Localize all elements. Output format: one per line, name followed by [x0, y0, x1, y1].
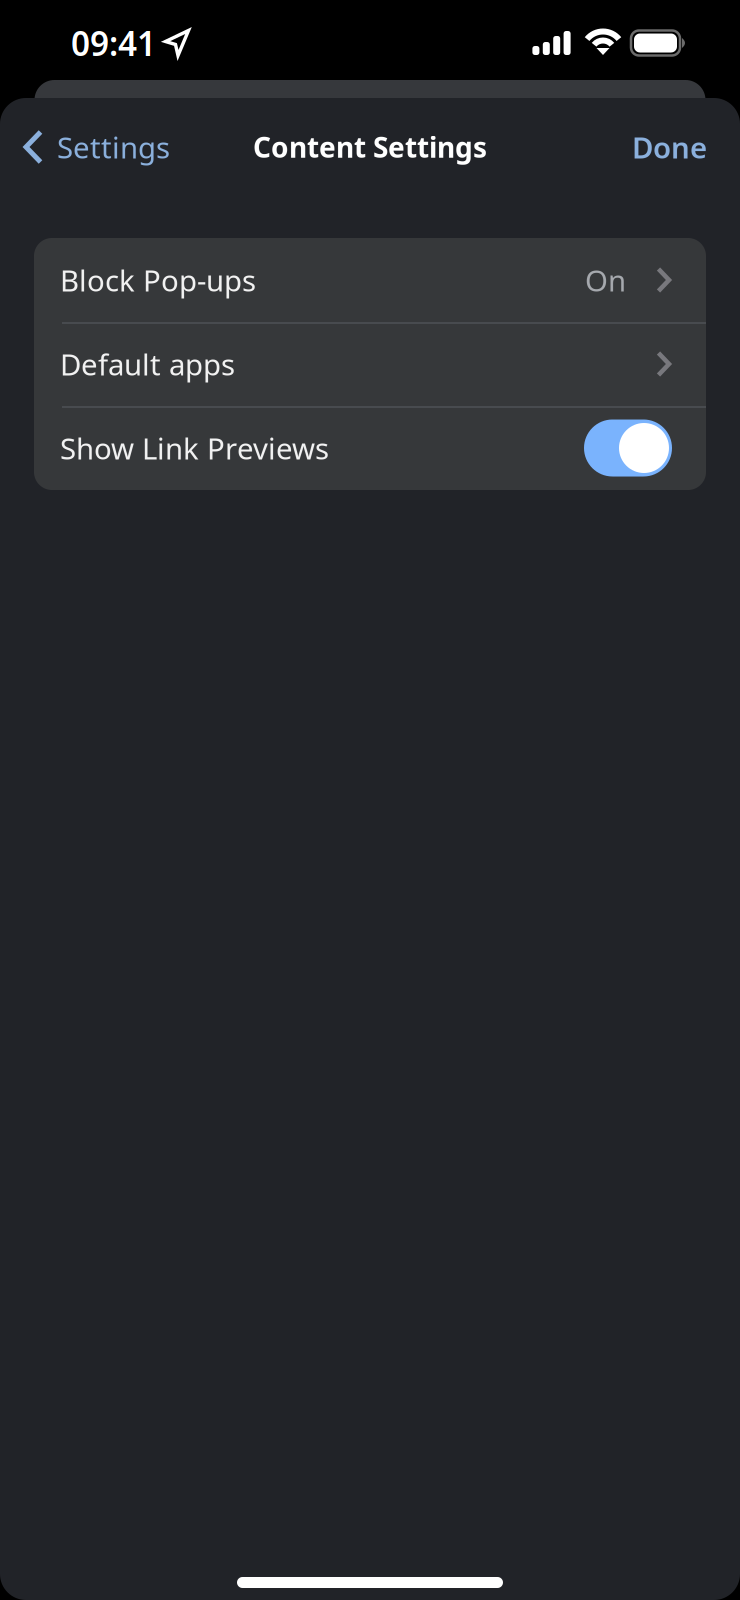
staticText: On	[585, 260, 626, 299]
staticText: Content Settings	[253, 128, 487, 166]
staticText: Done	[632, 127, 707, 166]
button[interactable]: Block Pop-ups	[34, 238, 706, 322]
button[interactable]: Show Link Previews	[584, 419, 672, 476]
button[interactable]: Default apps	[34, 322, 706, 406]
staticText: Default apps	[60, 344, 235, 383]
staticText: 09:41	[71, 21, 156, 65]
button[interactable]: Done	[614, 102, 740, 192]
staticText: Settings	[57, 127, 170, 166]
staticText: Block Pop-ups	[60, 260, 256, 299]
button[interactable]: Settings	[0, 102, 185, 192]
staticText: Show Link Previews	[60, 428, 329, 467]
